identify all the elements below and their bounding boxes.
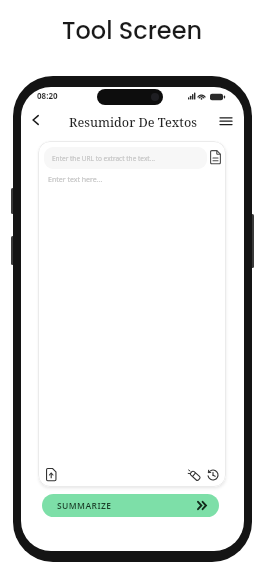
button[interactable]: Enter the URL to extract the text... <box>44 147 207 169</box>
staticText: Resumidor De Textos <box>69 114 197 131</box>
staticText: Tool Screen <box>62 14 203 48</box>
button[interactable] <box>220 117 232 126</box>
staticText: SUMMARIZE <box>57 500 112 512</box>
staticText: Enter the URL to extract the text... <box>52 154 155 163</box>
staticText: 08:20 <box>37 90 58 101</box>
button[interactable] <box>46 468 57 482</box>
button[interactable]: SUMMARIZE <box>42 494 219 517</box>
button[interactable] <box>210 150 221 165</box>
button[interactable] <box>32 115 40 125</box>
staticText: Enter text here... <box>48 175 103 185</box>
button[interactable] <box>207 469 219 481</box>
button[interactable] <box>188 469 201 482</box>
